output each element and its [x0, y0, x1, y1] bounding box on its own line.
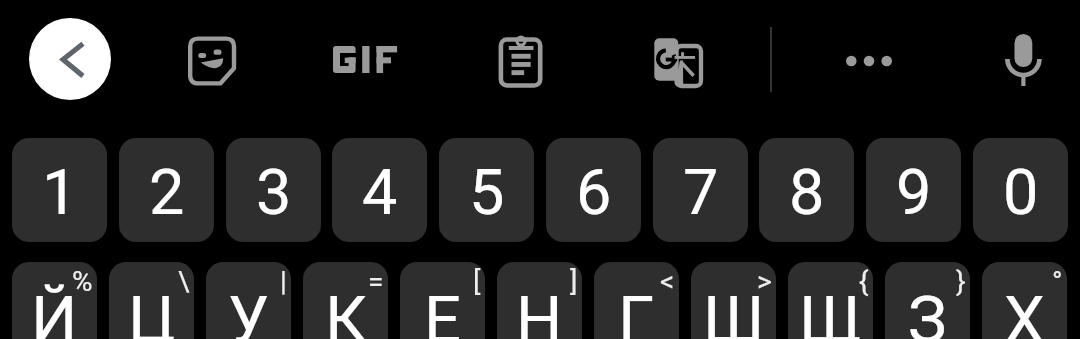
button[interactable]: } [885, 262, 970, 339]
button[interactable]: = [303, 262, 388, 339]
staticText: { [859, 265, 869, 298]
button[interactable]: ° [982, 262, 1067, 339]
staticText: 5 [469, 156, 505, 230]
button[interactable]: 3 [226, 138, 321, 242]
button[interactable]: 0 [973, 138, 1068, 242]
staticText: 7 [683, 156, 719, 230]
button[interactable]: < [594, 262, 679, 339]
button[interactable]: % [12, 262, 97, 339]
button[interactable]: [ [400, 262, 485, 339]
staticText: 1 [42, 156, 78, 230]
staticText: З [908, 282, 947, 339]
staticText: < [660, 265, 675, 298]
staticText: Е [424, 282, 461, 339]
button[interactable]: Translate [654, 40, 701, 87]
staticText: } [956, 265, 966, 298]
button[interactable]: 7 [653, 138, 748, 242]
button[interactable]: 6 [546, 138, 641, 242]
staticText: % [72, 265, 93, 298]
staticText: ] [570, 265, 578, 298]
staticText: Х [1004, 282, 1045, 339]
staticText: [ [473, 265, 481, 298]
staticText: ° [1052, 265, 1063, 298]
button[interactable]: | [206, 262, 291, 339]
button[interactable]: 4 [332, 138, 427, 242]
button[interactable]: Voice input [1005, 34, 1042, 87]
staticText: К [325, 282, 367, 339]
staticText: Н [516, 282, 563, 339]
button[interactable]: \ [109, 262, 194, 339]
button[interactable]: ] [497, 262, 582, 339]
staticText: 4 [362, 156, 398, 230]
staticText: Й [31, 282, 78, 339]
button[interactable]: { [788, 262, 873, 339]
button[interactable]: Stickers [188, 36, 235, 84]
staticText: 9 [896, 156, 932, 230]
button[interactable]: 1 [12, 138, 107, 242]
button[interactable]: 2 [119, 138, 214, 242]
staticText: 0 [1003, 156, 1039, 230]
staticText: У [228, 282, 269, 339]
staticText: | [280, 265, 287, 298]
staticText: 6 [576, 156, 612, 230]
staticText: = [368, 265, 384, 298]
staticText: Щ [799, 282, 862, 339]
button[interactable]: 5 [439, 138, 534, 242]
button[interactable]: > [691, 262, 776, 339]
staticText: 2 [149, 156, 185, 230]
button[interactable]: GIF [333, 46, 397, 73]
button[interactable]: 8 [759, 138, 854, 242]
staticText: 8 [789, 156, 825, 230]
button[interactable]: Back [29, 18, 111, 100]
staticText: \ [178, 265, 190, 298]
button[interactable]: Clipboard [500, 37, 541, 87]
staticText: Г [618, 282, 655, 339]
staticText: Ц [128, 282, 176, 339]
button[interactable]: More options [846, 55, 892, 67]
staticText: Ш [703, 282, 765, 339]
staticText: > [757, 265, 772, 298]
staticText: 3 [256, 156, 292, 230]
button[interactable]: 9 [866, 138, 961, 242]
